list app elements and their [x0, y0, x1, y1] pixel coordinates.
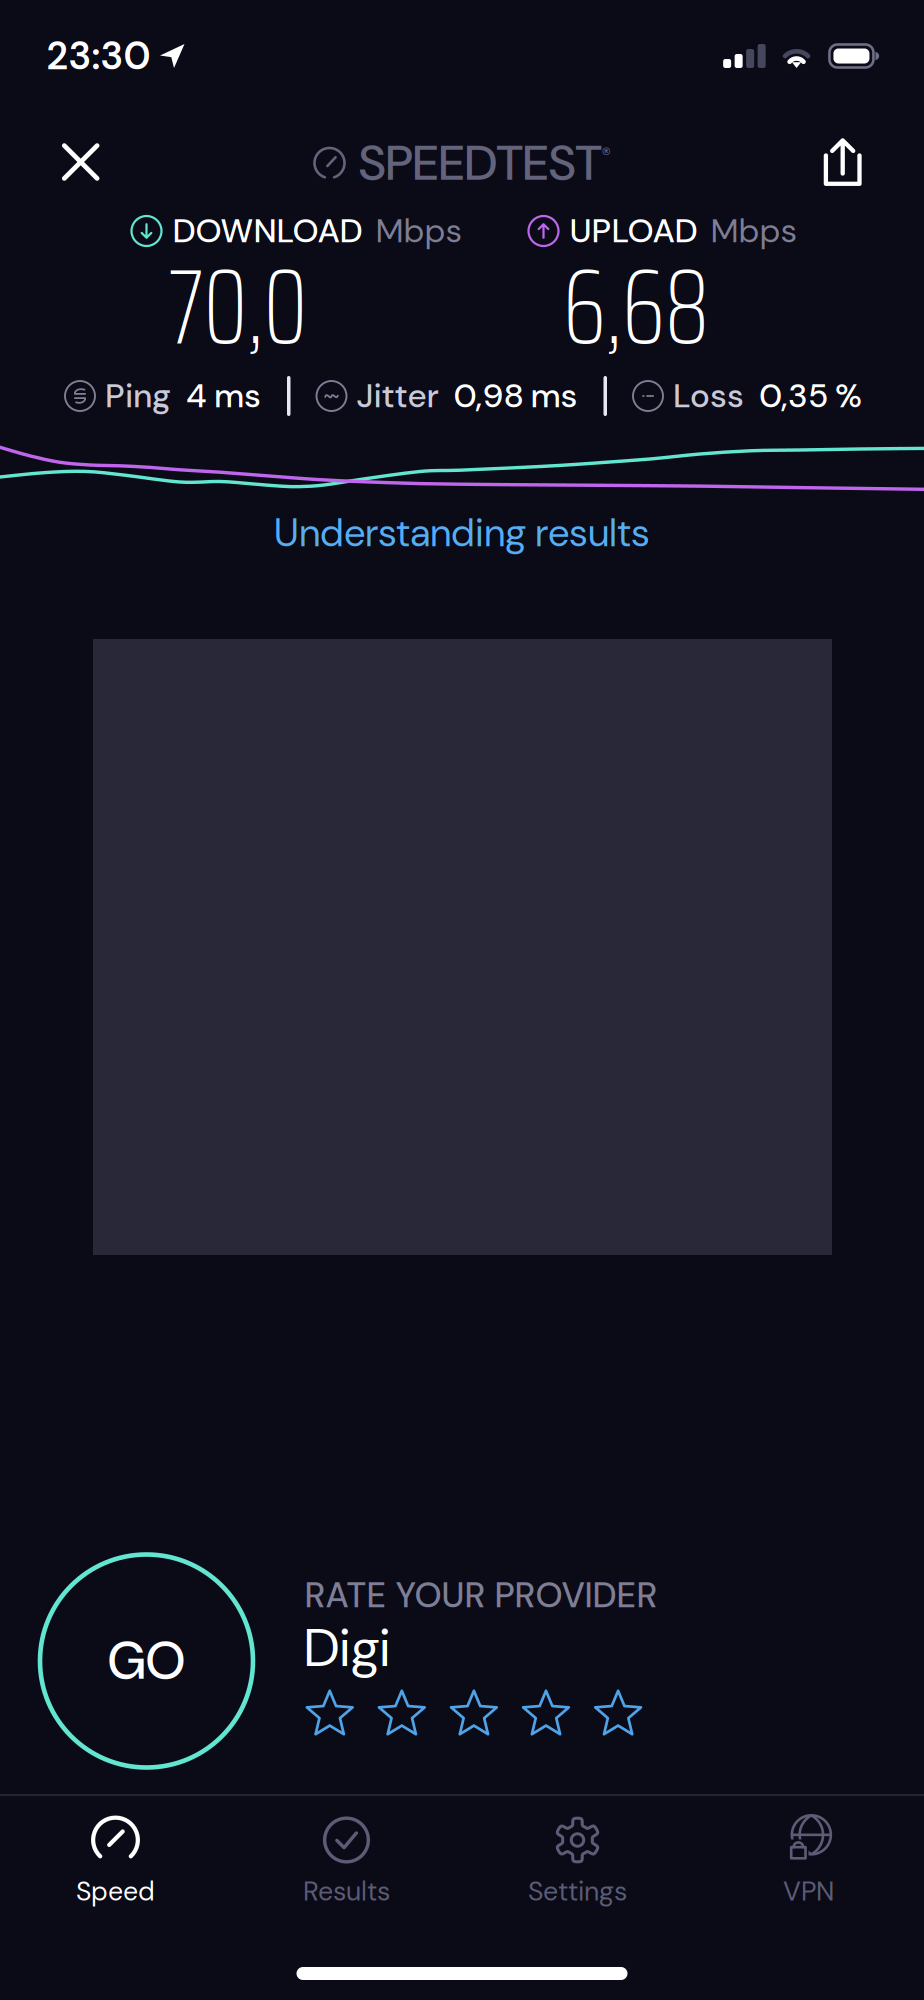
- staticText: 0,98 ms: [453, 374, 577, 418]
- staticText: 70,0: [168, 222, 307, 390]
- button[interactable]: Settings: [462, 1796, 693, 1925]
- staticText: 0,35 %: [759, 374, 862, 418]
- staticText: Results: [303, 1874, 390, 1909]
- staticText: 4 ms: [186, 374, 261, 418]
- button[interactable]: VPN: [693, 1796, 924, 1925]
- staticText: UPLOAD: [569, 209, 697, 253]
- button[interactable]: Speed: [0, 1796, 231, 1925]
- staticText: Loss: [673, 374, 744, 418]
- button[interactable]: Close: [47, 128, 115, 196]
- button[interactable]: Rate 2 stars: [376, 1689, 427, 1740]
- staticText: SPEEDTEST: [358, 131, 601, 195]
- button[interactable]: Rate 1 star: [304, 1689, 355, 1740]
- button[interactable]: Start speed test: [40, 1554, 253, 1767]
- staticText: 23:30: [46, 31, 150, 81]
- staticText: Ping: [105, 374, 171, 418]
- staticText: RATE YOUR PROVIDER: [304, 1573, 657, 1618]
- staticText: DOWNLOAD: [172, 209, 362, 253]
- button[interactable]: Results: [231, 1796, 462, 1925]
- button[interactable]: Rate 5 stars: [593, 1689, 643, 1740]
- staticText: 6,68: [563, 222, 709, 390]
- staticText: Speed: [76, 1874, 155, 1909]
- staticText: VPN: [783, 1874, 834, 1909]
- staticText: Jitter: [356, 374, 438, 418]
- staticText: ®: [601, 143, 610, 167]
- button[interactable]: Understanding results: [256, 498, 668, 568]
- staticText: Settings: [528, 1874, 627, 1909]
- staticText: Mbps: [375, 209, 462, 253]
- button[interactable]: Share: [810, 124, 876, 200]
- button[interactable]: Rate 3 stars: [449, 1689, 499, 1740]
- staticText: Understanding results: [274, 508, 650, 558]
- staticText: Mbps: [710, 209, 797, 253]
- staticText: GO: [107, 1627, 185, 1695]
- button[interactable]: Rate 4 stars: [521, 1689, 571, 1740]
- staticText: Digi: [304, 1613, 390, 1682]
